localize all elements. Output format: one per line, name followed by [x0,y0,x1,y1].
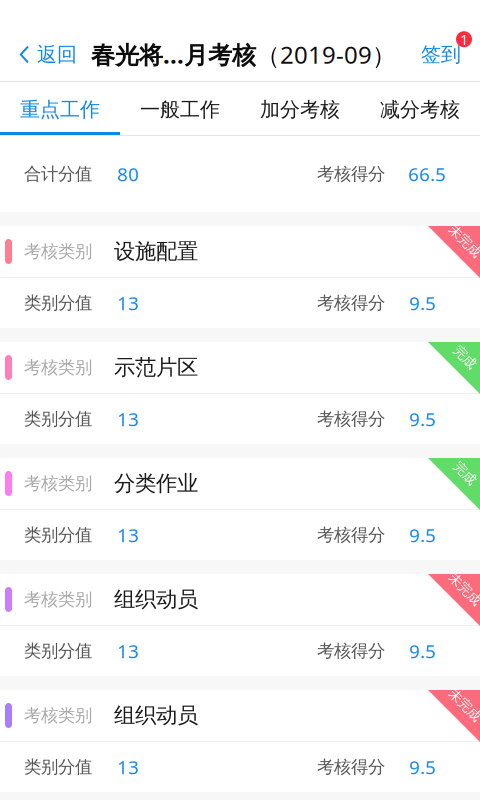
staticText: 考核类别 [24,589,92,610]
staticText: 类别分值 [24,408,92,430]
staticText: 加分考核 [260,97,340,122]
staticText: 13 [117,407,139,431]
staticText: 考核得分 [317,524,385,546]
staticText: 13 [117,755,139,779]
staticText: 设施配置 [114,238,198,265]
staticText: 考核得分 [317,292,385,314]
button[interactable]: 考核类别 [0,458,480,560]
staticText: 考核得分 [317,408,385,430]
staticText: 返回 [37,42,77,67]
staticText: 减分考核 [380,97,460,122]
staticText: 类别分值 [24,292,92,314]
staticText: 完成 [452,349,478,365]
button[interactable]: 加分考核 [240,82,360,135]
staticText: 考核类别 [24,473,92,494]
button[interactable]: 考核类别 [0,574,480,676]
staticText: 考核类别 [24,357,92,378]
staticText: 考核类别 [24,705,92,726]
button[interactable]: 重点工作 [0,82,120,135]
staticText: 组织动员 [114,586,198,613]
staticText: 1 [460,29,468,49]
staticText: 9.5 [409,407,436,431]
staticText: 未完成 [445,233,480,249]
staticText: 考核得分 [317,163,385,185]
staticText: 合计分值 [24,163,92,185]
staticText: 完成 [452,465,478,481]
staticText: 9.5 [409,523,436,547]
button[interactable]: 返回 [0,28,91,81]
staticText: 13 [117,639,139,663]
staticText: 春光将...月考核 [91,39,256,70]
staticText: 13 [117,523,139,547]
staticText: 66.5 [408,162,446,186]
staticText: 示范片区 [114,354,198,381]
button[interactable]: 签到 [407,28,480,81]
staticText: 重点工作 [20,97,100,122]
staticText: 9.5 [409,291,436,315]
staticText: 一般工作 [140,97,220,122]
staticText: 分类作业 [114,470,198,497]
staticText: 类别分值 [24,756,92,778]
staticText: 考核得分 [317,640,385,662]
staticText: 考核类别 [24,241,92,262]
staticText: 签到 [421,42,461,67]
staticText: 未完成 [445,697,480,713]
staticText: 考核得分 [317,756,385,778]
staticText: （2019-09） [256,38,396,70]
staticText: 未完成 [445,581,480,597]
button[interactable]: 一般工作 [120,82,240,135]
staticText: 9.5 [409,755,436,779]
staticText: 组织动员 [114,702,198,729]
staticText: 类别分值 [24,640,92,662]
button[interactable]: 考核类别 [0,342,480,444]
staticText: 9.5 [409,639,436,663]
button[interactable]: 减分考核 [360,82,480,135]
button[interactable]: 考核类别 [0,690,480,792]
staticText: 13 [117,291,139,315]
staticText: 类别分值 [24,524,92,546]
staticText: 80 [117,162,139,186]
button[interactable]: 考核类别 [0,226,480,328]
